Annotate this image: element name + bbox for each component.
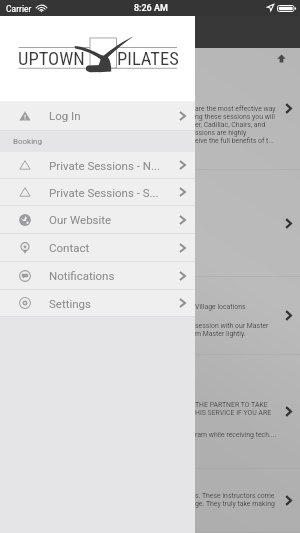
staticText: Private Sessions - S... <box>49 186 169 199</box>
staticText: eive the full benefits of t... <box>195 137 274 145</box>
button[interactable]: Contact <box>0 234 195 262</box>
staticText: Contact <box>49 241 169 254</box>
staticText: PILATES <box>117 48 179 70</box>
button[interactable] <box>0 170 300 277</box>
staticText: are the most effective way <box>195 105 276 113</box>
button[interactable]: Private Sessions - S... <box>0 179 195 206</box>
button[interactable]: Private Sessions - N... <box>0 152 195 179</box>
button[interactable]: THE PARTNER TO TAKE <box>0 355 300 469</box>
staticText: Private Sessions - N... <box>49 159 169 172</box>
staticText: er, Cadillac, Chairs, and <box>195 121 266 129</box>
staticText: s. These instructors come <box>195 492 275 500</box>
staticText: ge. They truly take making <box>195 500 275 508</box>
button[interactable]: Notifications <box>0 262 195 290</box>
button[interactable]: Scroll to top <box>0 48 300 170</box>
button[interactable]: Our Website <box>0 206 195 234</box>
button[interactable]: Settings <box>0 290 195 317</box>
staticText: ram while receiving tech.... <box>195 431 277 439</box>
staticText: ssions are highly <box>195 129 247 137</box>
button[interactable]: s. These instructors come <box>0 469 300 533</box>
staticText: Village locations <box>195 303 246 311</box>
staticText: 8:26 AM <box>134 3 168 14</box>
staticText: Our Website <box>49 213 169 226</box>
staticText: ng these sessions you will <box>195 113 275 121</box>
button[interactable]: Log In <box>0 101 195 131</box>
staticText: m Master lightly. <box>195 330 246 338</box>
other: Scroll to top <box>277 54 286 63</box>
staticText: Booking <box>13 137 43 146</box>
staticText: HIS SERVICE IF YOU ARE <box>195 409 272 417</box>
button[interactable]: Village locations <box>0 277 300 355</box>
staticText: UPTOWN <box>18 48 85 70</box>
staticText: Carrier <box>6 4 32 14</box>
staticText: session with our Master <box>195 322 269 330</box>
staticText: Log In <box>49 109 169 122</box>
staticText: Settings <box>49 297 169 310</box>
staticText: THE PARTNER TO TAKE <box>195 401 268 409</box>
staticText: Notifications <box>49 269 169 282</box>
